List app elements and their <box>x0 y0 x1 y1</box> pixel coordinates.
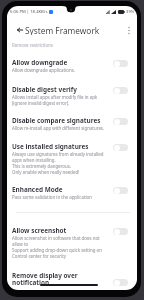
staticText: allow to <box>12 241 29 247</box>
staticText: Enhanced Mode <box>12 185 63 194</box>
button[interactable]: Toggle setting <box>113 187 128 194</box>
staticText: Always use signatures from already insta… <box>12 151 104 157</box>
staticText: apps when installing. <box>12 157 56 163</box>
staticText: 6:06 PM | 18.4KB/s <box>10 9 48 15</box>
button[interactable]: Allow screenshot <box>7 226 137 259</box>
staticText: System Framework <box>25 25 100 35</box>
staticText: 39% <box>126 9 135 15</box>
staticText: Allow downgrade <box>12 58 68 67</box>
staticText: Allow downgrade applications. <box>12 67 75 73</box>
staticText: Only enable when really needed! <box>12 169 80 175</box>
staticText: Allow screenshot <box>12 226 67 235</box>
button[interactable]: Toggle setting <box>113 118 128 125</box>
staticText: This is extremely dangerous. <box>12 163 71 169</box>
button[interactable]: Disable digest verify <box>7 85 137 106</box>
button[interactable]: Toggle setting <box>113 228 128 235</box>
staticText: Remove display over notification <box>12 271 78 287</box>
staticText: Allow re-install app with different sign… <box>12 125 105 131</box>
button[interactable]: Toggle setting <box>113 87 128 94</box>
staticText: (ignore invalid digest error). <box>12 100 70 106</box>
staticText: Support adding drop-down quick setting o… <box>12 247 102 253</box>
button[interactable]: Toggle setting <box>113 144 128 151</box>
button[interactable]: Allow downgrade <box>7 58 137 73</box>
staticText: Disable digest verify <box>12 85 77 94</box>
staticText: Use installed signatures <box>12 142 89 151</box>
button[interactable]: Remove display over notification <box>7 271 137 287</box>
staticText: Control center for security <box>12 253 66 259</box>
button[interactable]: Use installed signatures <box>7 142 137 175</box>
staticText: Disable compare signatures <box>12 116 101 125</box>
staticText: Allows install apps after modify file in… <box>12 94 98 100</box>
staticText: Allow screenshot in software that does n… <box>12 235 100 241</box>
button[interactable]: Toggle setting <box>113 279 128 286</box>
button[interactable]: Enhanced Mode <box>7 185 137 200</box>
button[interactable]: Toggle setting <box>113 60 128 67</box>
button[interactable]: More options <box>123 25 134 35</box>
button[interactable]: Navigate back <box>14 25 25 35</box>
staticText: Remove restrictions <box>12 42 53 48</box>
staticText: Pass some validation in the application <box>12 194 92 200</box>
button[interactable]: Disable compare signatures <box>7 116 137 131</box>
